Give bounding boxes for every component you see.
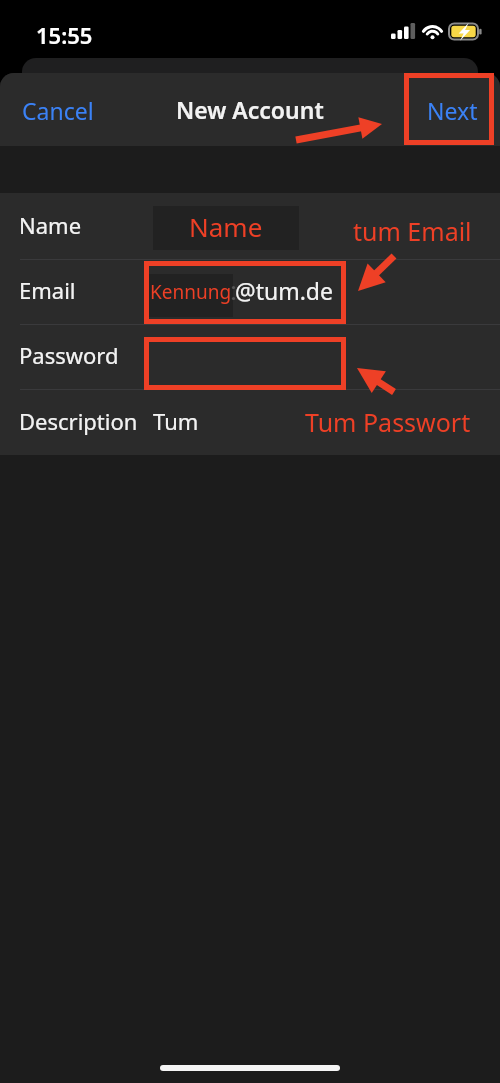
staticText: New Account xyxy=(176,94,324,125)
staticText: tum Email xyxy=(353,214,472,248)
staticText: Name xyxy=(189,209,263,244)
button[interactable]: Email xyxy=(0,259,500,324)
staticText: Password xyxy=(19,340,119,370)
staticText: 15:55 xyxy=(36,20,93,50)
staticText: Description xyxy=(19,406,138,436)
button[interactable]: Password xyxy=(0,324,500,389)
staticText: Next xyxy=(427,95,478,126)
staticText: Name xyxy=(19,210,82,240)
button[interactable]: Description xyxy=(0,389,500,455)
staticText: Cancel xyxy=(22,95,94,126)
button[interactable]: Cancel xyxy=(0,84,112,136)
staticText: Kennung xyxy=(150,279,232,305)
button[interactable]: Next xyxy=(409,84,500,136)
staticText: Email xyxy=(19,275,76,305)
staticText: Tum Passwort xyxy=(305,405,471,439)
button[interactable]: Name xyxy=(0,193,500,259)
staticText: @tum.de xyxy=(235,275,333,306)
other: Home indicator xyxy=(160,1065,340,1071)
staticText: Tum xyxy=(153,406,199,436)
